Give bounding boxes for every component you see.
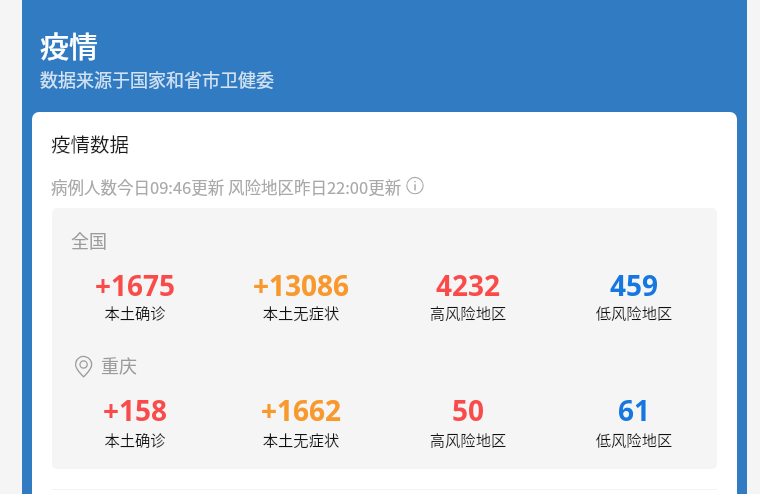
button[interactable]: +1675 xyxy=(52,266,218,319)
staticText: 全国 xyxy=(71,227,107,253)
staticText: 本土确诊 xyxy=(52,428,218,450)
staticText: 50 xyxy=(385,391,551,429)
button[interactable]: 459 xyxy=(551,266,717,319)
staticText: 疫情数据 xyxy=(51,129,130,157)
button[interactable]: 61 xyxy=(551,391,717,446)
staticText: 低风险地区 xyxy=(551,428,717,450)
staticText: 4232 xyxy=(385,266,551,304)
staticText: 本土无症状 xyxy=(218,428,384,450)
button[interactable]: +1662 xyxy=(218,391,384,446)
staticText: 低风险地区 xyxy=(551,301,717,323)
staticText: 数据来源于国家和省市卫健委 xyxy=(40,66,274,92)
staticText: 459 xyxy=(551,266,717,304)
staticText: 病例人数今日09:46更新 风险地区昨日22:00更新 xyxy=(51,175,402,199)
staticText: +1662 xyxy=(218,391,384,429)
staticText: 高风险地区 xyxy=(385,301,551,323)
button[interactable]: 50 xyxy=(385,391,551,446)
staticText: 本土无症状 xyxy=(218,301,384,323)
staticText: +158 xyxy=(52,391,218,429)
button[interactable]: +13086 xyxy=(218,266,384,319)
button[interactable]: 4232 xyxy=(385,266,551,319)
staticText: 本土确诊 xyxy=(52,301,218,323)
button[interactable]: Location xyxy=(75,355,93,380)
button[interactable]: Info xyxy=(406,176,425,195)
button[interactable] xyxy=(32,112,737,494)
staticText: +1675 xyxy=(52,266,218,304)
staticText: +13086 xyxy=(218,266,384,304)
staticText: 高风险地区 xyxy=(385,428,551,450)
button[interactable]: +158 xyxy=(52,391,218,446)
staticText: 疫情 xyxy=(40,24,99,66)
staticText: 重庆 xyxy=(101,352,137,378)
staticText: 61 xyxy=(551,391,717,429)
